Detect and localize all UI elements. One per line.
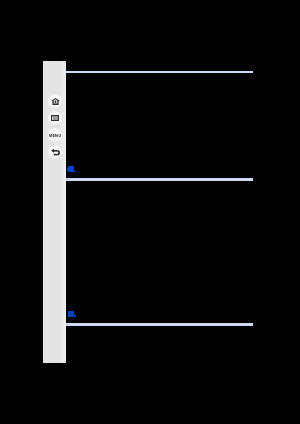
button[interactable]: Back — [48, 145, 62, 159]
staticText: MENU — [48, 133, 62, 138]
button[interactable]: Menu — [48, 128, 62, 142]
button[interactable]: Home — [48, 94, 62, 108]
button[interactable]: Recent apps — [48, 111, 62, 125]
